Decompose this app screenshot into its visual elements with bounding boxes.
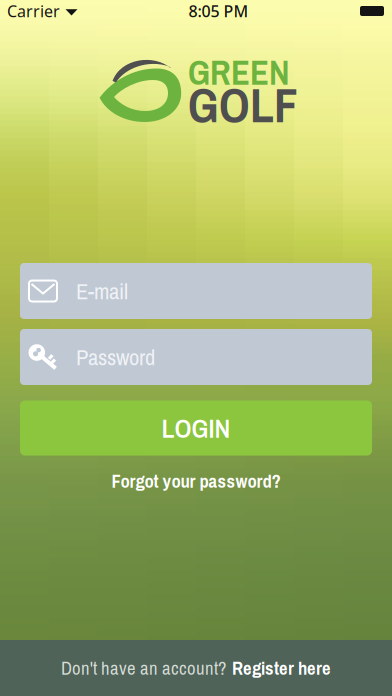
staticText: Register here	[232, 655, 331, 680]
button[interactable]: LOGIN	[20, 400, 372, 455]
button[interactable]: Password	[20, 329, 372, 385]
staticText: LOGIN	[161, 410, 230, 446]
staticText: Forgot your password?	[111, 468, 280, 493]
staticText: 8:05 PM	[188, 0, 248, 22]
button[interactable]: E-mail	[20, 263, 372, 319]
staticText: Don't have an account?	[61, 655, 227, 680]
staticText: Password	[76, 342, 155, 372]
staticText: GREEN	[188, 49, 290, 95]
staticText: E-mail	[76, 276, 128, 306]
staticText: GOLF	[188, 72, 298, 137]
button[interactable]: Forgot your password?	[111, 470, 280, 492]
button[interactable]: Don't have an account?	[0, 640, 392, 696]
staticText: Carrier	[7, 0, 60, 22]
